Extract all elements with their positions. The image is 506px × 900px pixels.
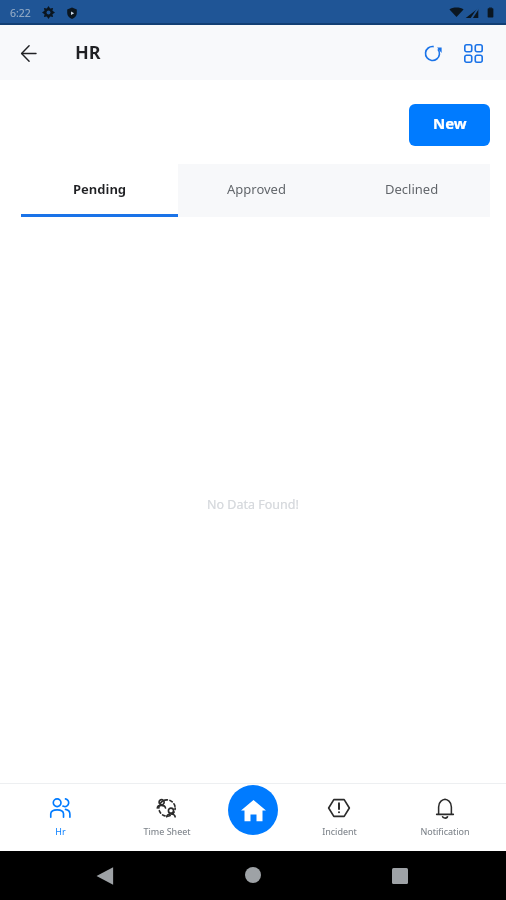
button[interactable]: Recents (392, 868, 408, 884)
button[interactable]: Back (10, 35, 46, 71)
button[interactable]: Incident (296, 797, 382, 837)
staticText: New (433, 113, 467, 133)
staticText: HR (75, 40, 101, 65)
button[interactable]: Back (96, 867, 114, 885)
button[interactable]: Hr (17, 797, 103, 837)
button[interactable]: Declined (334, 164, 490, 217)
staticText: Notification (420, 825, 470, 837)
button[interactable]: New (409, 104, 490, 146)
button[interactable]: Notification (402, 797, 488, 837)
staticText: No Data Found! (207, 496, 299, 513)
staticText: Hr (55, 825, 66, 837)
button[interactable]: Approved (178, 164, 334, 217)
staticText: Approved (227, 180, 286, 198)
button[interactable]: Grid view (455, 35, 491, 71)
staticText: Pending (73, 180, 127, 198)
button[interactable]: Pending (21, 164, 178, 217)
button[interactable]: Home (228, 785, 278, 835)
button[interactable]: Home (245, 867, 261, 883)
staticText: 6:22 (10, 6, 31, 20)
staticText: Time Sheet (143, 825, 191, 837)
staticText: Declined (385, 180, 439, 198)
button[interactable]: Refresh (414, 35, 450, 71)
button[interactable]: Time Sheet (124, 797, 210, 837)
staticText: Incident (322, 825, 357, 837)
